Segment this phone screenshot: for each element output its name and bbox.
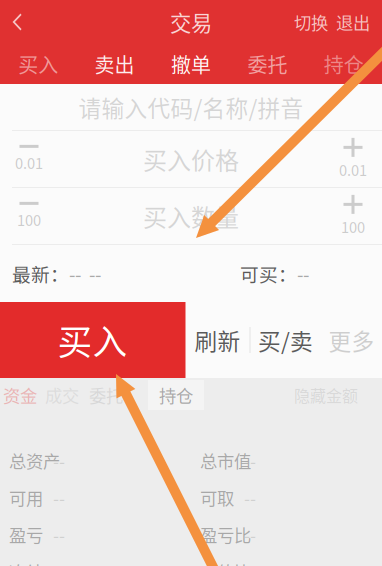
button[interactable]: 成交 xyxy=(40,378,84,412)
staticText: 委托 xyxy=(247,49,287,78)
staticText: 卖出 xyxy=(95,49,135,78)
button[interactable]: 委托 xyxy=(84,378,128,412)
staticText: -- xyxy=(244,448,256,473)
button[interactable]: 持仓 xyxy=(148,380,204,410)
staticText: -- xyxy=(297,260,309,287)
staticText: 买/卖 xyxy=(258,324,313,356)
staticText: -- -- xyxy=(69,260,101,287)
button[interactable]: 撤单 xyxy=(153,44,229,84)
button[interactable]: 退出 xyxy=(332,0,374,44)
staticText: 请输入代码/名称/拼音 xyxy=(78,91,303,123)
staticText: 持仓 xyxy=(159,382,193,408)
staticText: 0.01 xyxy=(15,152,43,173)
staticText: 委托 xyxy=(89,382,123,408)
staticText: -- xyxy=(53,485,65,510)
button[interactable]: 减少买入价格 xyxy=(0,131,58,187)
staticText: 盈亏比 xyxy=(200,522,251,547)
button[interactable]: 返回 xyxy=(0,0,34,44)
staticText: 买入 xyxy=(57,315,127,365)
staticText: -- xyxy=(244,559,256,566)
staticText: 退出 xyxy=(336,9,370,35)
button[interactable]: 买/卖 xyxy=(250,302,320,378)
button[interactable]: 减少买入数量 xyxy=(0,188,58,244)
staticText: 撤单 xyxy=(171,49,211,78)
button[interactable]: 请输入代码/名称/拼音 xyxy=(0,84,382,130)
button[interactable]: 委托 xyxy=(229,44,306,84)
button[interactable]: 增加买入价格 xyxy=(324,131,382,187)
staticText: 资金 xyxy=(3,382,37,408)
button[interactable]: 资金 xyxy=(0,378,40,412)
staticText: 买入 xyxy=(18,49,58,78)
staticText: -- xyxy=(244,485,256,510)
staticText: 切换 xyxy=(294,9,328,35)
staticText: 更多 xyxy=(328,324,374,356)
button[interactable]: 切换 xyxy=(290,0,332,44)
button[interactable]: 买入 xyxy=(0,44,76,84)
staticText: -- xyxy=(53,522,65,547)
button[interactable]: 买入 xyxy=(0,302,185,378)
button[interactable]: 刷新 xyxy=(185,302,249,378)
staticText: 总资产 xyxy=(9,448,60,473)
staticText: 总市值 xyxy=(200,448,251,473)
staticText: 可用 xyxy=(9,485,43,510)
staticText: 隐藏金额 xyxy=(294,383,358,407)
staticText: 盈亏 xyxy=(9,522,43,547)
button[interactable]: 隐藏金额 xyxy=(294,378,358,412)
staticText: 最新： xyxy=(12,260,69,287)
staticText: 可取 xyxy=(200,485,234,510)
button[interactable]: 增加买入数量 xyxy=(324,188,382,244)
staticText: 刷新 xyxy=(194,324,240,356)
staticText: 交易 xyxy=(170,7,212,37)
staticText: -- xyxy=(53,448,65,473)
staticText: 100 xyxy=(17,209,41,230)
button[interactable]: 更多 xyxy=(320,302,382,378)
staticText: 冻结 xyxy=(9,559,43,566)
staticText: 可买： xyxy=(240,260,297,287)
button[interactable]: 卖出 xyxy=(76,44,153,84)
staticText: -- xyxy=(244,522,256,547)
staticText: 成交 xyxy=(45,382,79,408)
staticText: 100 xyxy=(341,216,365,237)
button[interactable]: 持仓 xyxy=(306,44,382,84)
staticText: 0.01 xyxy=(339,159,367,180)
staticText: 买入价格 xyxy=(143,142,239,176)
staticText: 买入数量 xyxy=(143,199,239,233)
staticText: 市值比 xyxy=(200,559,251,566)
staticText: 持仓 xyxy=(324,49,364,78)
